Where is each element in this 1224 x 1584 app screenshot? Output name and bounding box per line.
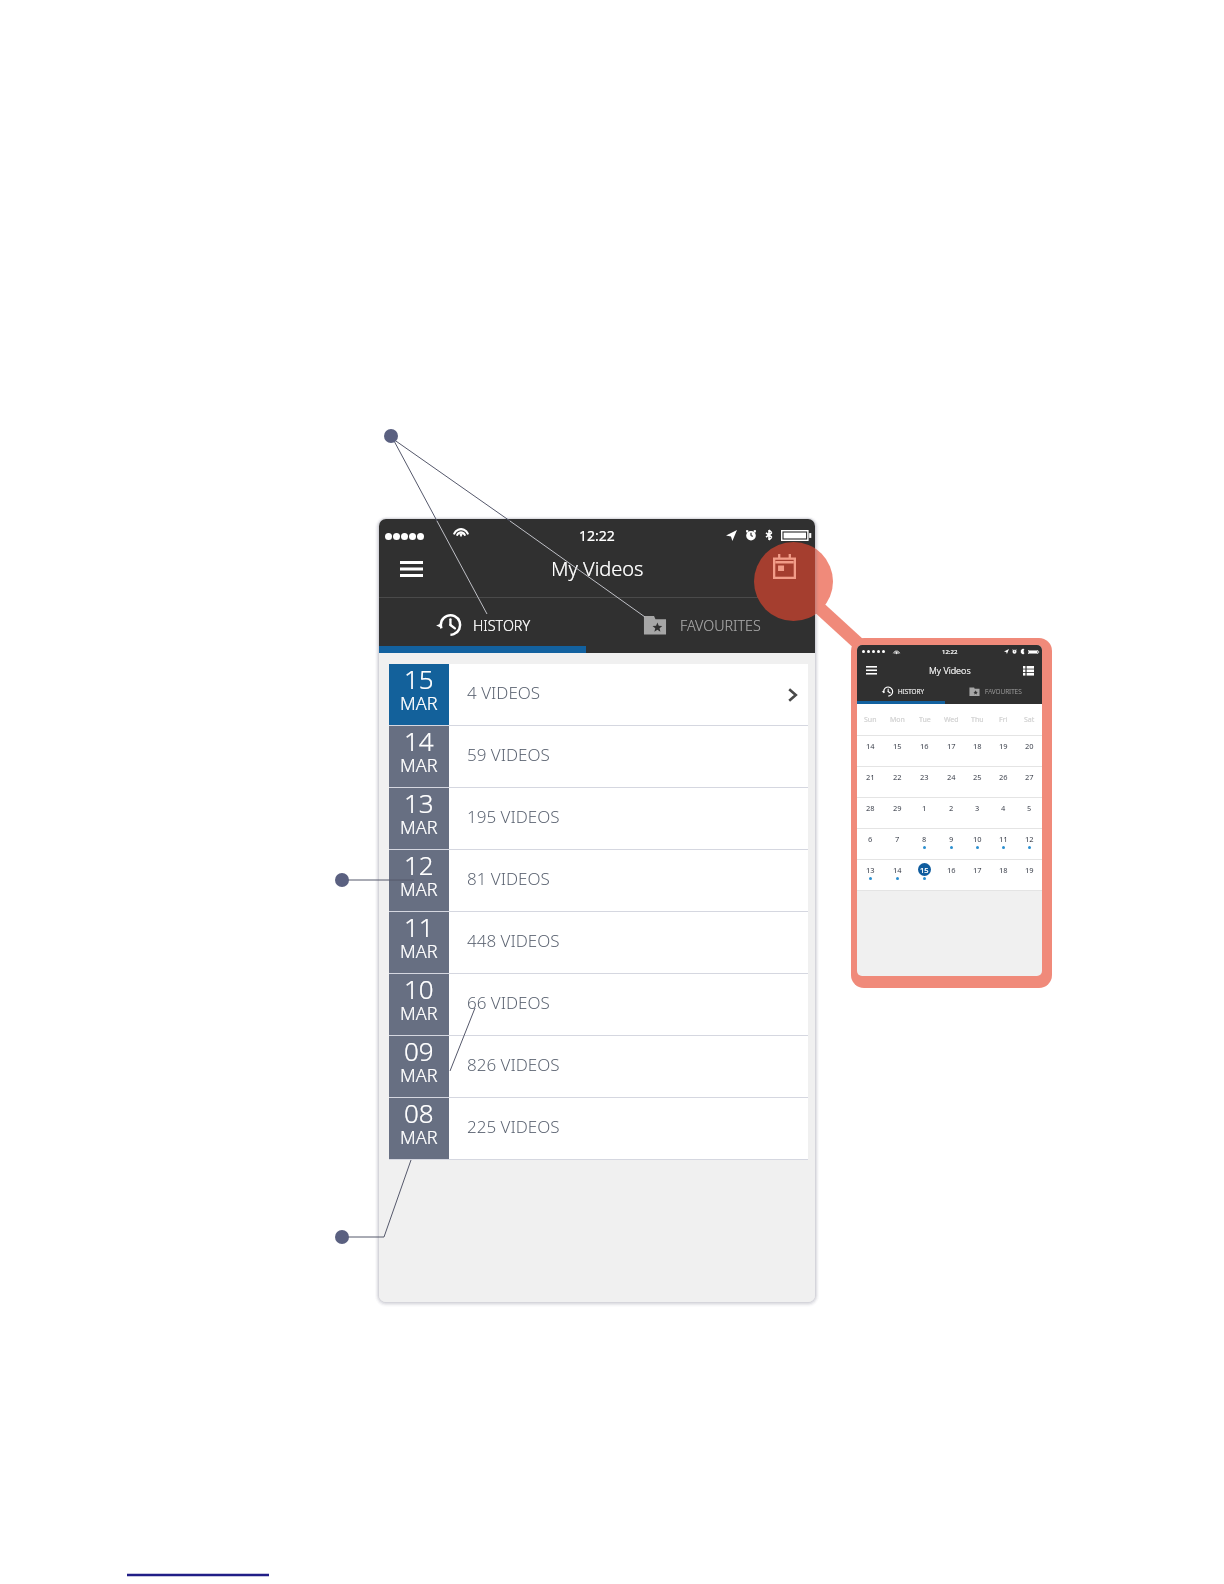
staticText: 19: [1025, 865, 1034, 875]
button[interactable]: 22: [884, 767, 911, 798]
button[interactable]: 195 VIDEOS: [449, 788, 808, 850]
button[interactable]: 09: [389, 1036, 449, 1098]
button[interactable]: 29: [884, 798, 911, 829]
button[interactable]: 14: [884, 860, 911, 891]
staticText: 225 VIDEOS: [467, 1115, 560, 1138]
staticText: 3: [975, 803, 980, 813]
staticText: 21: [866, 772, 875, 782]
button[interactable]: 11: [990, 829, 1016, 860]
staticText: Thu: [971, 715, 984, 725]
staticText: 8: [922, 834, 927, 844]
button[interactable]: 14: [389, 726, 449, 788]
button[interactable]: 3: [964, 798, 990, 829]
staticText: 27: [1025, 772, 1034, 782]
button[interactable]: Menu: [393, 551, 429, 587]
staticText: MAR: [400, 1063, 438, 1088]
staticText: Sat: [1024, 715, 1035, 725]
staticText: 448 VIDEOS: [467, 929, 560, 952]
staticText: 16: [920, 741, 929, 751]
button[interactable]: 15: [911, 860, 938, 891]
button[interactable]: Menu: [864, 663, 878, 677]
button[interactable]: 18: [990, 860, 1016, 891]
button[interactable]: 4: [990, 798, 1016, 829]
button[interactable]: 27: [1016, 767, 1042, 798]
button[interactable]: 8: [911, 829, 938, 860]
staticText: 1: [922, 803, 927, 813]
staticText: 826 VIDEOS: [467, 1053, 560, 1076]
staticText: HISTORY: [473, 616, 531, 635]
button[interactable]: HISTORY: [379, 601, 593, 649]
button[interactable]: 12: [1016, 829, 1042, 860]
button[interactable]: 13: [857, 860, 884, 891]
staticText: 10: [973, 834, 982, 844]
button[interactable]: 08: [389, 1098, 449, 1160]
button[interactable]: 4 VIDEOS: [449, 664, 808, 726]
staticText: 12:22: [579, 526, 615, 545]
button[interactable]: Open calendar: [754, 542, 815, 621]
staticText: 23: [920, 772, 929, 782]
staticText: 12: [404, 847, 434, 882]
button[interactable]: HISTORY: [857, 681, 949, 701]
button[interactable]: FAVOURITES: [593, 601, 811, 649]
button[interactable]: 16: [911, 736, 938, 767]
button[interactable]: 13: [389, 788, 449, 850]
button[interactable]: 5: [1016, 798, 1042, 829]
button[interactable]: 19: [990, 736, 1016, 767]
staticText: 4: [1001, 803, 1006, 813]
button[interactable]: 7: [884, 829, 911, 860]
button[interactable]: 10: [389, 974, 449, 1036]
staticText: 66 VIDEOS: [467, 991, 550, 1014]
button[interactable]: 25: [964, 767, 990, 798]
button[interactable]: 10: [964, 829, 990, 860]
staticText: 11: [999, 834, 1008, 844]
button[interactable]: 59 VIDEOS: [449, 726, 808, 788]
button[interactable]: 18: [964, 736, 990, 767]
staticText: 15: [893, 741, 902, 751]
button[interactable]: 826 VIDEOS: [449, 1036, 808, 1098]
staticText: MAR: [400, 691, 438, 716]
staticText: 16: [947, 865, 956, 875]
button[interactable]: 448 VIDEOS: [449, 912, 808, 974]
button[interactable]: 12: [389, 850, 449, 912]
button[interactable]: FAVOURITES: [949, 681, 1042, 701]
staticText: MAR: [400, 1001, 438, 1026]
staticText: 19: [999, 741, 1008, 751]
button[interactable]: 1: [911, 798, 938, 829]
button[interactable]: 16: [938, 860, 964, 891]
staticText: 9: [949, 834, 954, 844]
staticText: 25: [973, 772, 982, 782]
staticText: Wed: [944, 715, 959, 725]
button[interactable]: 15: [884, 736, 911, 767]
staticText: MAR: [400, 753, 438, 778]
button[interactable]: 17: [964, 860, 990, 891]
button[interactable]: 21: [857, 767, 884, 798]
staticText: 15: [404, 661, 434, 696]
button[interactable]: 81 VIDEOS: [449, 850, 808, 912]
button[interactable]: 2: [938, 798, 964, 829]
staticText: FAVOURITES: [985, 687, 1022, 696]
button[interactable]: 28: [857, 798, 884, 829]
staticText: MAR: [400, 815, 438, 840]
staticText: MAR: [400, 939, 438, 964]
button[interactable]: 15: [389, 664, 449, 726]
button[interactable]: List view: [1021, 663, 1035, 677]
button[interactable]: 26: [990, 767, 1016, 798]
staticText: 81 VIDEOS: [467, 867, 550, 890]
button[interactable]: 11: [389, 912, 449, 974]
button[interactable]: 23: [911, 767, 938, 798]
staticText: 5: [1027, 803, 1032, 813]
button[interactable]: 9: [938, 829, 964, 860]
staticText: 08: [404, 1095, 434, 1130]
staticText: 29: [893, 803, 902, 813]
button[interactable]: 14: [857, 736, 884, 767]
button[interactable]: 66 VIDEOS: [449, 974, 808, 1036]
staticText: 6: [868, 834, 873, 844]
button[interactable]: 24: [938, 767, 964, 798]
button[interactable]: 17: [938, 736, 964, 767]
button[interactable]: 225 VIDEOS: [449, 1098, 808, 1160]
staticText: 10: [404, 971, 434, 1006]
button[interactable]: 19: [1016, 860, 1042, 891]
button[interactable]: 6: [857, 829, 884, 860]
staticText: 12: [1025, 834, 1034, 844]
button[interactable]: 20: [1016, 736, 1042, 767]
